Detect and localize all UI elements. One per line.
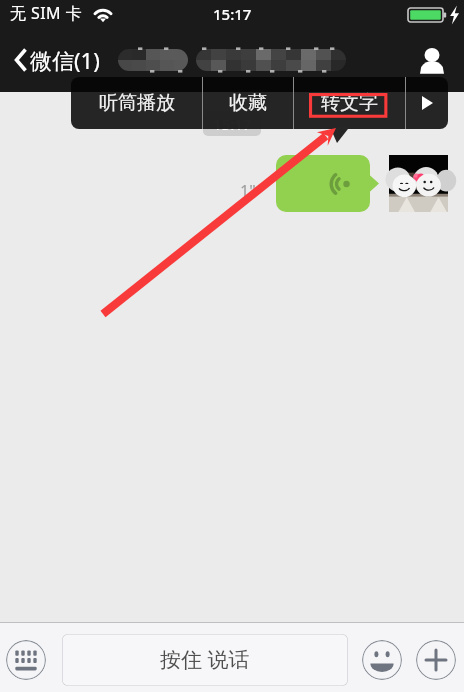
button[interactable]: More options (416, 640, 456, 680)
staticText: 1" (240, 180, 256, 202)
staticText: 转文字 (321, 91, 378, 115)
staticText: 15:17 (213, 4, 252, 24)
button[interactable]: 转文字 (294, 77, 405, 129)
button[interactable]: 收藏 (203, 77, 293, 129)
button[interactable]: Contact info (410, 38, 454, 82)
button[interactable]: Keyboard (6, 640, 46, 680)
button[interactable]: 按住 说话 (62, 634, 348, 686)
button[interactable]: 听筒播放 (71, 77, 202, 129)
button[interactable]: 微信(1) (0, 45, 110, 75)
button[interactable]: More (406, 77, 448, 129)
button[interactable]: Emoji (362, 640, 402, 680)
staticText: 收藏 (229, 91, 267, 115)
staticText: 微信(1) (30, 45, 100, 75)
staticText: 15:17 (213, 114, 252, 134)
staticText: 按住 说话 (160, 645, 250, 674)
staticText: 听筒播放 (99, 91, 175, 115)
button[interactable]: Avatar (389, 155, 448, 212)
staticText: 无 SIM 卡 (10, 2, 82, 24)
